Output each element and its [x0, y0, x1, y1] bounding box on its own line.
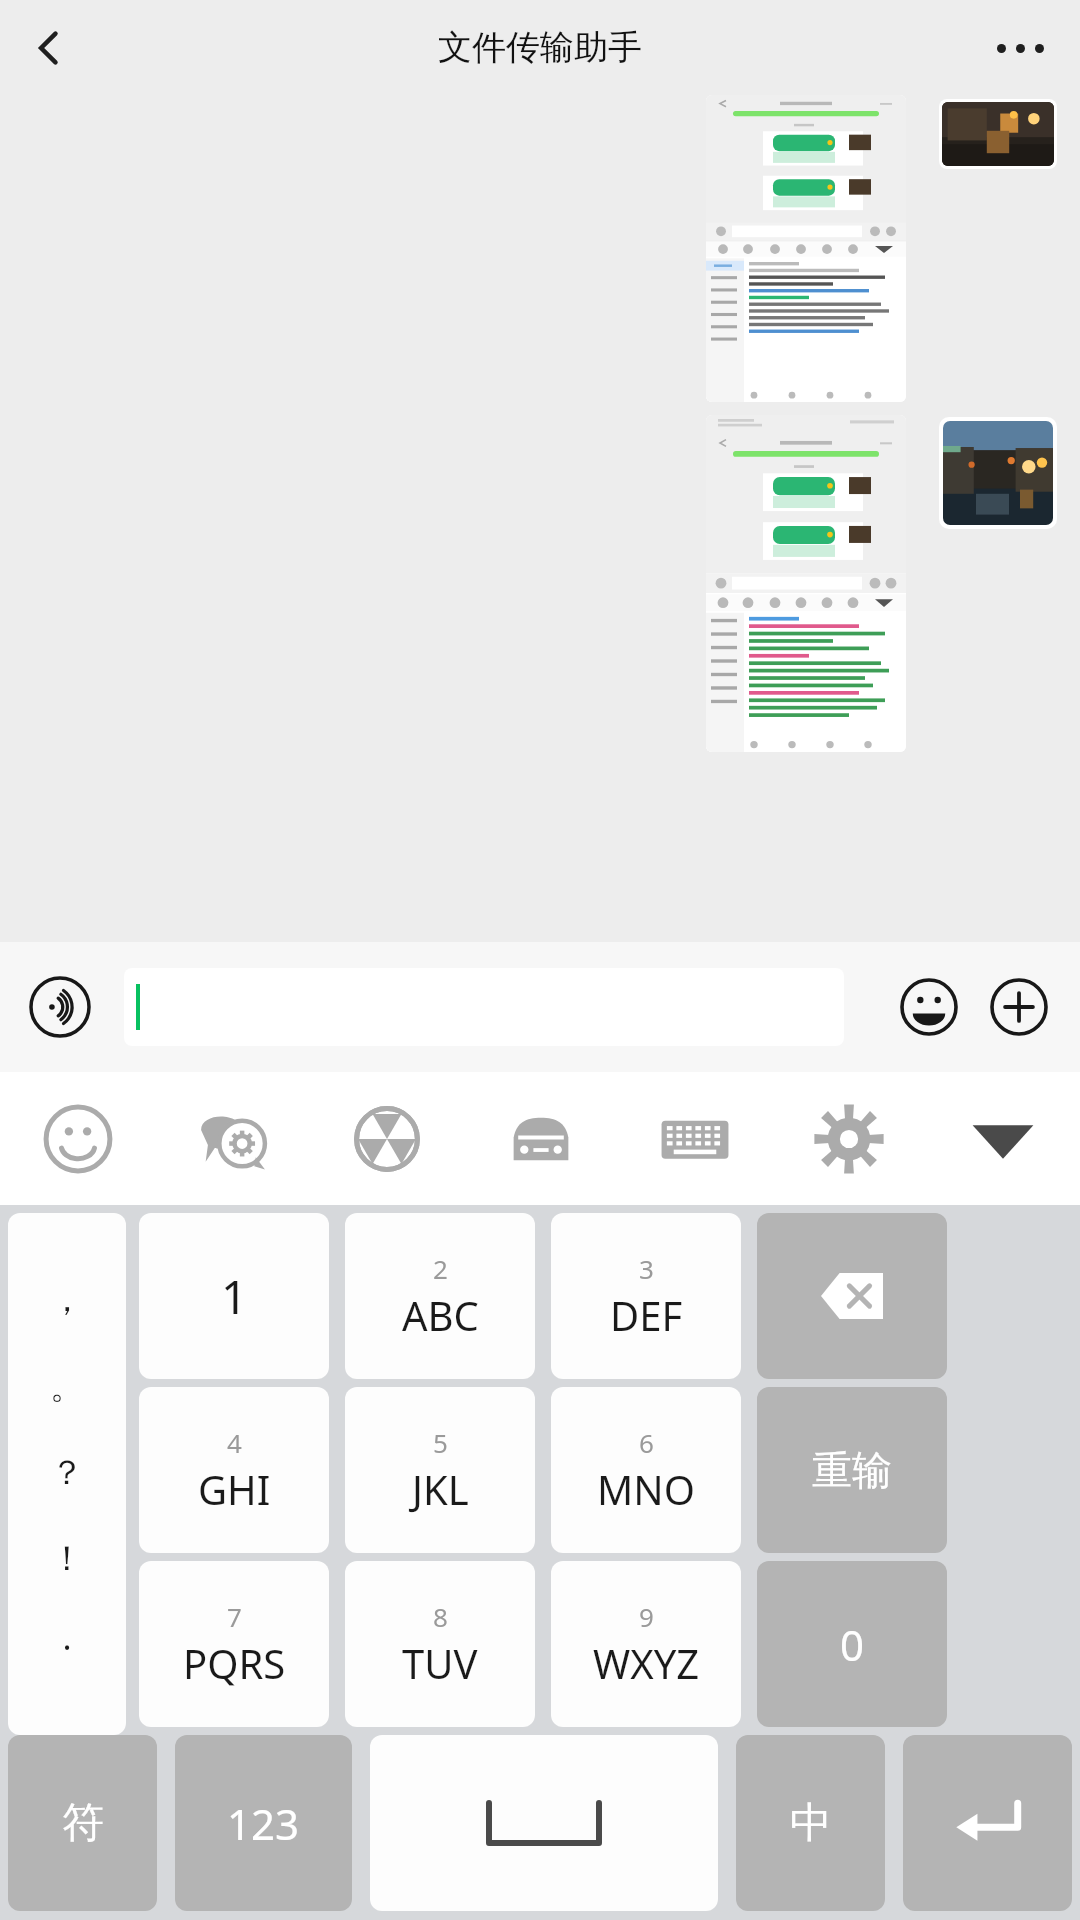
button[interactable]: 重输 — [757, 1387, 947, 1553]
staticText: 1 — [221, 1265, 248, 1328]
staticText: PQRS — [183, 1636, 286, 1690]
staticText: · — [62, 1624, 72, 1670]
button[interactable]: Keyboard layout — [618, 1072, 772, 1205]
staticText: 5 — [433, 1425, 448, 1460]
button[interactable]: Voice input — [24, 971, 96, 1043]
button[interactable]: 7 — [139, 1561, 329, 1727]
button[interactable]: 123 — [175, 1735, 352, 1911]
button[interactable]: 2 — [345, 1213, 535, 1379]
button[interactable]: ， — [8, 1213, 126, 1735]
staticText: 2 — [433, 1251, 448, 1286]
staticText: ， — [50, 1278, 84, 1321]
button[interactable]: Camera — [310, 1072, 464, 1205]
staticText: 4 — [227, 1425, 242, 1460]
button[interactable]: More functions — [984, 972, 1054, 1042]
staticText: TUV — [402, 1636, 478, 1690]
button[interactable]: Photo — [942, 102, 1054, 166]
staticText: ABC — [402, 1288, 479, 1342]
button[interactable]: Settings — [772, 1072, 926, 1205]
button[interactable]: Chat screenshot — [706, 415, 906, 752]
button[interactable]: 9 — [551, 1561, 741, 1727]
button[interactable]: 3 — [551, 1213, 741, 1379]
button[interactable]: Chat settings — [155, 1072, 310, 1205]
staticText: 0 — [840, 1616, 865, 1673]
button[interactable]: 符 — [8, 1735, 157, 1911]
button[interactable]: More options — [980, 8, 1060, 88]
button[interactable]: Delete — [757, 1213, 947, 1379]
staticText: 。 — [50, 1365, 84, 1408]
staticText: MNO — [597, 1462, 695, 1516]
button[interactable]: 0 — [757, 1561, 947, 1727]
staticText: 6 — [639, 1425, 654, 1460]
staticText: 8 — [433, 1599, 448, 1634]
staticText: 7 — [227, 1599, 242, 1634]
button[interactable]: Space — [370, 1735, 718, 1911]
button[interactable]: Chat screenshot — [706, 95, 906, 402]
staticText: 重输 — [812, 1445, 892, 1495]
staticText: ？ — [50, 1451, 84, 1494]
button[interactable]: Car mode — [464, 1072, 618, 1205]
button[interactable]: Emoji — [894, 972, 964, 1042]
staticText: 123 — [227, 1795, 300, 1852]
staticText: 9 — [639, 1599, 654, 1634]
button[interactable]: 5 — [345, 1387, 535, 1553]
staticText: 符 — [62, 1797, 104, 1850]
button[interactable] — [124, 968, 844, 1046]
staticText: 3 — [639, 1251, 654, 1286]
staticText: DEF — [610, 1288, 683, 1342]
button[interactable]: 8 — [345, 1561, 535, 1727]
button[interactable]: 中 — [736, 1735, 885, 1911]
staticText: JKL — [412, 1462, 469, 1516]
staticText: ！ — [50, 1537, 84, 1580]
staticText: 文件传输助手 — [438, 26, 642, 69]
button[interactable]: Hide keyboard — [926, 1072, 1080, 1205]
button[interactable]: Back — [14, 13, 84, 83]
button[interactable]: Photo — [943, 421, 1053, 525]
button[interactable]: 1 — [139, 1213, 329, 1379]
staticText: WXYZ — [593, 1636, 700, 1690]
button[interactable]: 6 — [551, 1387, 741, 1553]
staticText: 中 — [790, 1797, 832, 1850]
staticText: GHI — [198, 1462, 271, 1516]
button[interactable]: 4 — [139, 1387, 329, 1553]
button[interactable]: Emoji — [0, 1072, 155, 1205]
button[interactable]: Enter — [903, 1735, 1072, 1911]
